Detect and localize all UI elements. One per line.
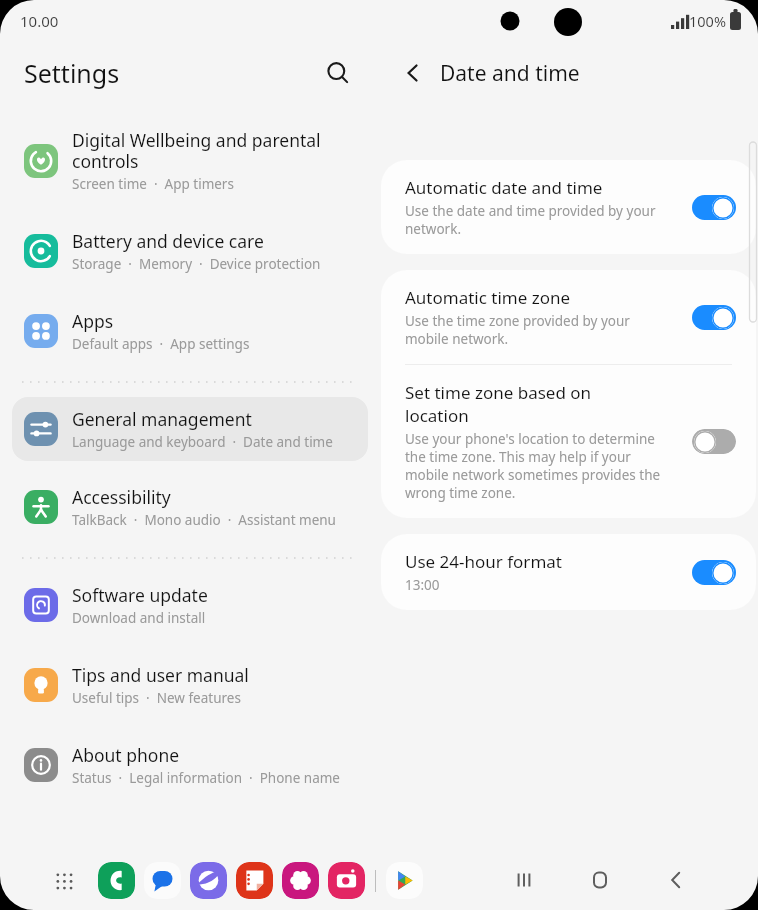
button[interactable]: Gallery <box>282 862 319 899</box>
staticText: Use your phone's location to determine t… <box>405 430 661 502</box>
staticText: About phone <box>72 743 180 767</box>
staticText: Default apps · App settings <box>72 335 250 353</box>
staticText: Use 24-hour format <box>405 550 562 573</box>
button[interactable]: General management <box>12 397 368 461</box>
staticText: Tips and user manual <box>72 663 249 687</box>
staticText: Useful tips · New features <box>72 689 241 707</box>
button[interactable]: On <box>692 195 736 220</box>
staticText: Status · Legal information · Phone name <box>72 769 340 787</box>
button[interactable]: Play Store <box>386 862 423 899</box>
button[interactable]: Back <box>392 52 434 94</box>
staticText: Software update <box>72 583 208 607</box>
button[interactable]: Automatic date and time <box>381 160 756 254</box>
button[interactable]: Phone <box>98 862 135 899</box>
button[interactable]: Recent apps <box>500 856 548 904</box>
staticText: Download and install <box>72 609 206 627</box>
staticText: Use the time zone provided by your mobil… <box>405 312 630 348</box>
button[interactable]: About phone <box>12 733 368 797</box>
button[interactable]: Accessibility <box>12 475 368 539</box>
button[interactable]: Messages <box>144 862 181 899</box>
button[interactable]: Digital Wellbeing and parental controls <box>12 118 368 203</box>
staticText: Accessibility <box>72 485 171 509</box>
staticText: Automatic date and time <box>405 176 603 199</box>
button[interactable]: Off <box>692 429 736 454</box>
staticText: Set time zone based on location <box>405 381 592 427</box>
staticText: 13:00 <box>405 576 440 594</box>
staticText: Language and keyboard · Date and time <box>72 433 333 451</box>
staticText: Use the date and time provided by your n… <box>405 202 656 238</box>
button[interactable]: Search <box>318 53 358 93</box>
staticText: Digital Wellbeing and parental controls <box>72 128 321 173</box>
button[interactable]: Back <box>652 856 700 904</box>
button[interactable]: Apps <box>46 863 82 899</box>
staticText: Screen time · App timers <box>72 175 234 193</box>
button[interactable]: On <box>692 560 736 585</box>
staticText: Settings <box>24 56 120 90</box>
button[interactable]: Use 24-hour format <box>381 534 756 610</box>
staticText: 100% <box>689 11 726 31</box>
staticText: Storage · Memory · Device protection <box>72 255 321 273</box>
button[interactable]: On <box>692 305 736 330</box>
staticText: Apps <box>72 309 114 333</box>
staticText: 10.00 <box>20 11 59 31</box>
staticText: Date and time <box>440 59 580 88</box>
staticText: Automatic time zone <box>405 286 571 309</box>
staticText: Battery and device care <box>72 229 264 253</box>
staticText: TalkBack · Mono audio · Assistant menu <box>72 511 336 529</box>
button[interactable]: Home <box>576 856 624 904</box>
button[interactable]: Battery and device care <box>12 219 368 283</box>
staticText: General management <box>72 407 252 431</box>
button[interactable]: Internet <box>190 862 227 899</box>
button[interactable]: Notes <box>236 862 273 899</box>
button[interactable]: Camera <box>328 862 365 899</box>
button[interactable]: Set time zone based on location <box>381 365 756 518</box>
button[interactable]: Automatic time zone <box>381 270 756 364</box>
button[interactable]: Software update <box>12 573 368 637</box>
button[interactable]: Tips and user manual <box>12 653 368 717</box>
button[interactable]: Apps <box>12 299 368 363</box>
